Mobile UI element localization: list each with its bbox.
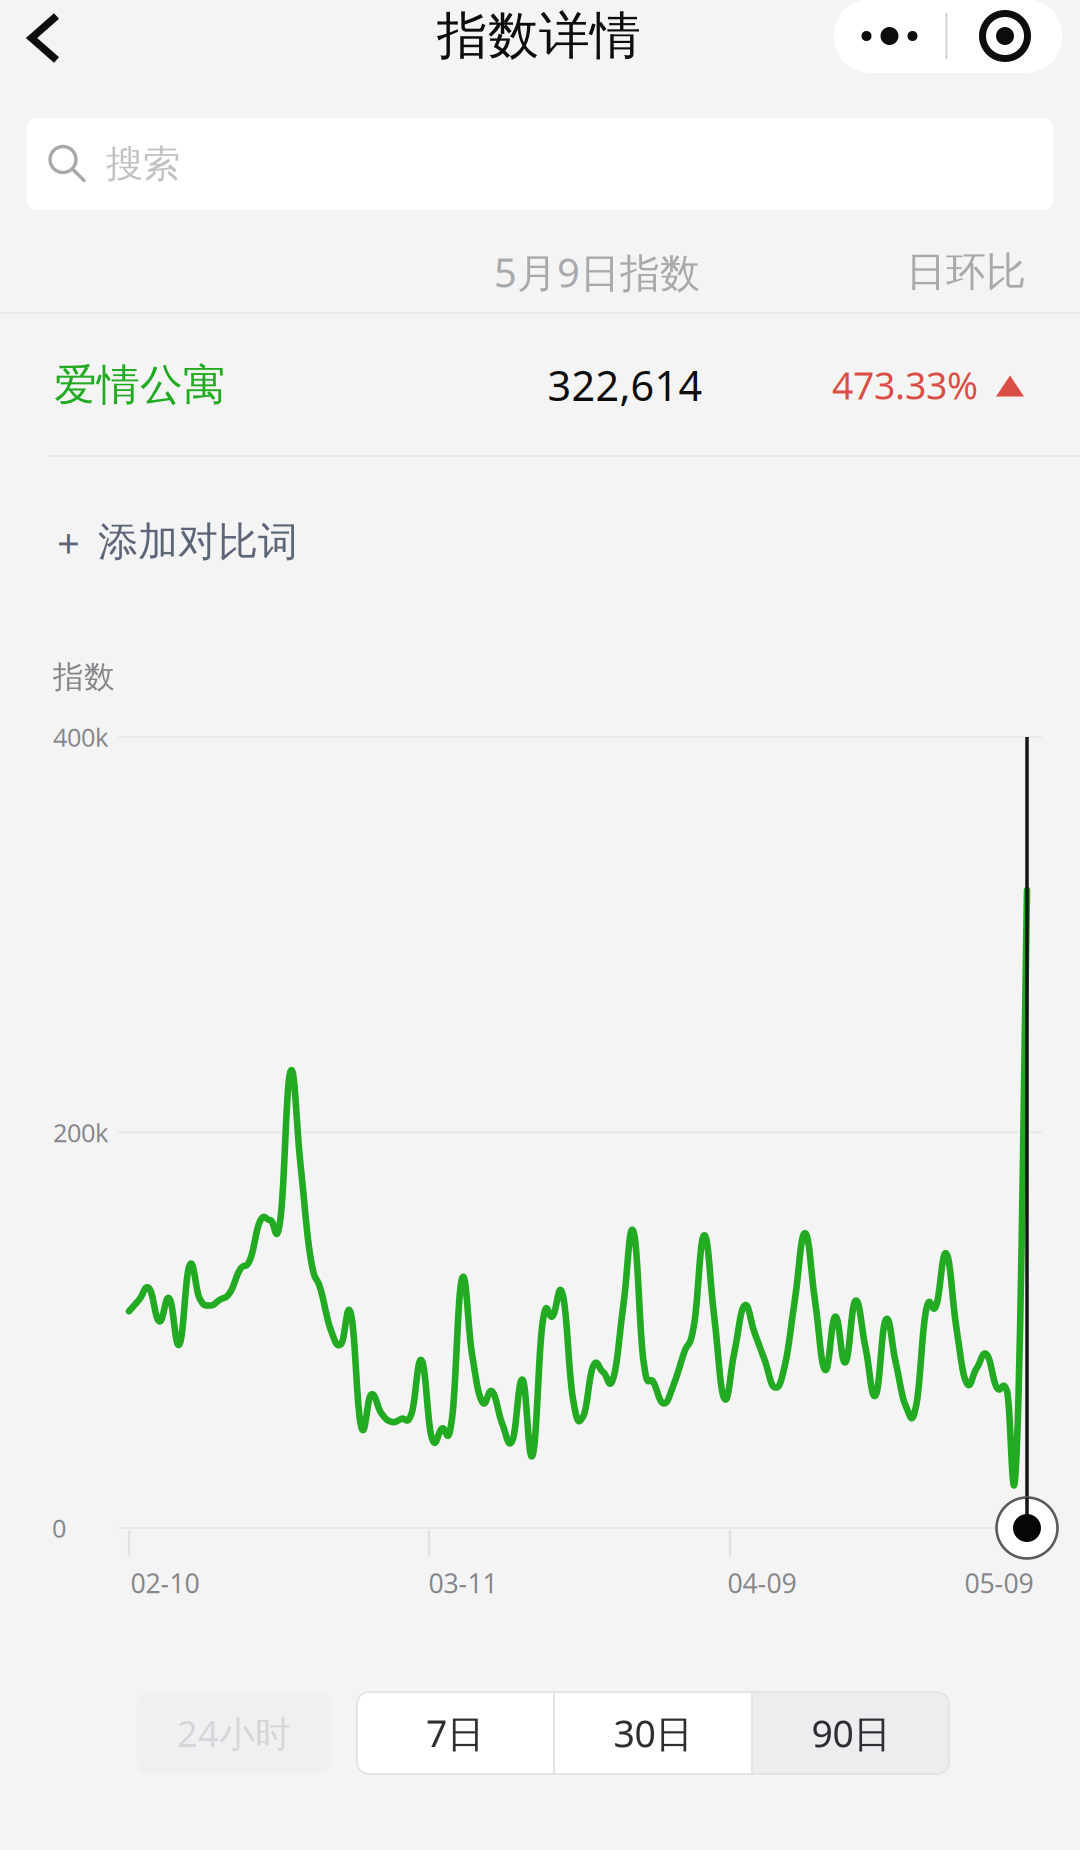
button[interactable]: 90日 <box>753 1692 949 1774</box>
button[interactable]: 搜索 <box>27 118 1053 210</box>
button[interactable]: + <box>0 467 1080 617</box>
staticText: 05-09 <box>964 1565 1033 1601</box>
staticText: 日环比 <box>906 247 1026 296</box>
staticText: 0 <box>52 1511 66 1545</box>
staticText: 04-09 <box>727 1565 796 1601</box>
staticText: 03-11 <box>428 1565 497 1601</box>
button[interactable]: 爱情公寓 <box>0 314 1080 456</box>
button[interactable]: Close mini program <box>947 0 1062 73</box>
staticText: 90日 <box>811 1708 890 1758</box>
staticText: 400k <box>53 720 109 754</box>
staticText: + <box>57 515 80 568</box>
staticText: 322,614 <box>547 358 702 412</box>
button[interactable]: 24小时 <box>137 1692 331 1774</box>
staticText: 24小时 <box>177 1709 291 1757</box>
staticText: 200k <box>53 1116 109 1149</box>
button[interactable]: More <box>833 0 945 73</box>
staticText: 30日 <box>613 1708 692 1758</box>
staticText: 7日 <box>426 1708 484 1758</box>
staticText: 搜索 <box>106 141 180 187</box>
button[interactable]: 30日 <box>555 1692 751 1774</box>
staticText: 473.33% <box>832 360 978 410</box>
staticText: 指数详情 <box>437 5 641 67</box>
staticText: 指数 <box>53 658 115 696</box>
staticText: 02-10 <box>130 1565 199 1601</box>
staticText: 5月9日指数 <box>494 245 700 298</box>
staticText: 爱情公寓 <box>54 359 226 411</box>
button[interactable]: Back <box>0 0 92 83</box>
button[interactable]: 7日 <box>357 1692 553 1774</box>
staticText: 添加对比词 <box>98 517 298 566</box>
